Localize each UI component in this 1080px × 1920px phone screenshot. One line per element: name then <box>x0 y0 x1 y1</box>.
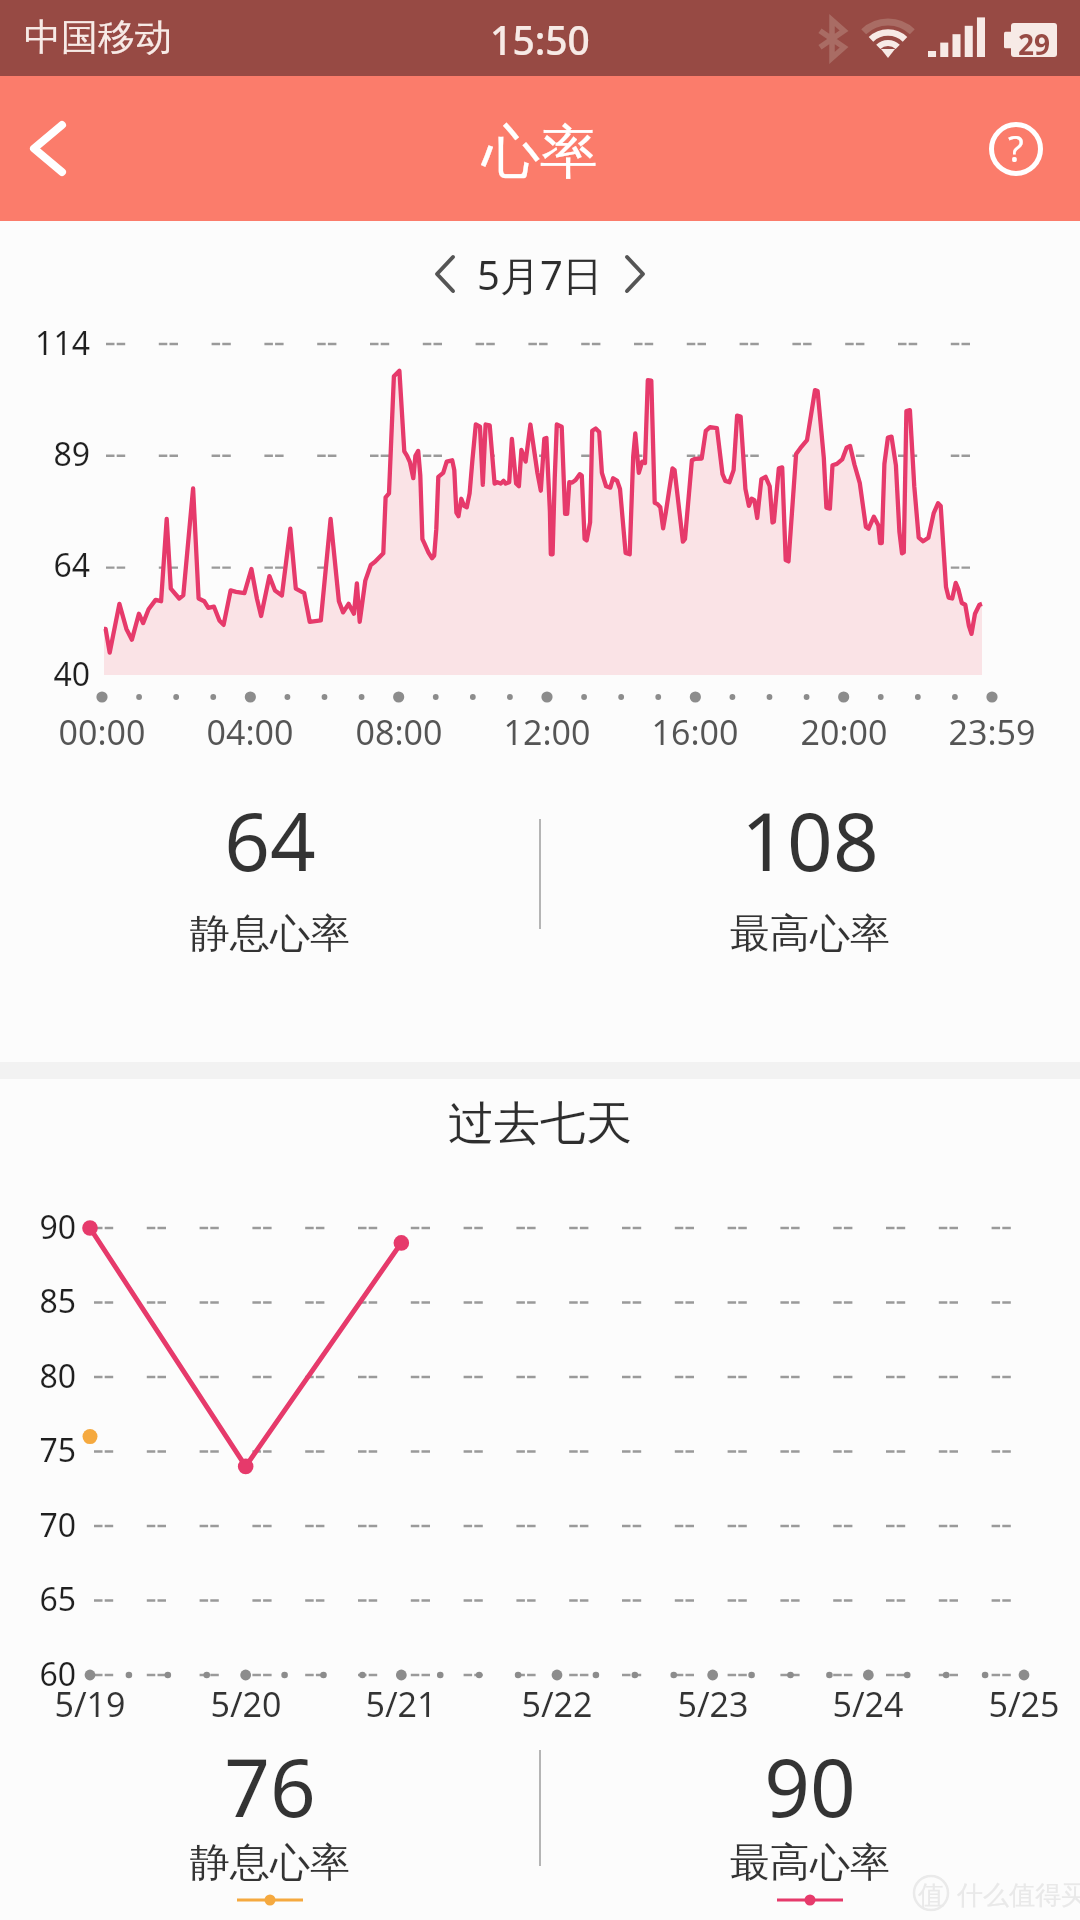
button[interactable]: Help <box>950 76 1080 221</box>
staticText: 过去七天 <box>0 1095 1080 1153</box>
staticText: 65 <box>0 1577 76 1621</box>
button[interactable]: 108 <box>630 763 990 953</box>
staticText: 64 <box>90 785 450 894</box>
staticText: 108 <box>630 785 990 894</box>
staticText: 76 <box>90 1731 450 1840</box>
staticText: 80 <box>0 1354 76 1398</box>
button[interactable]: 64 <box>90 763 450 953</box>
staticText: 85 <box>0 1279 76 1323</box>
button[interactable]: Back <box>0 76 120 221</box>
staticText: 5/19 <box>0 1681 240 1727</box>
staticText: 值 <box>918 1879 944 1912</box>
button[interactable]: Previous day <box>413 239 477 309</box>
staticText: 23:59 <box>842 709 1080 755</box>
staticText: 最高心率 <box>630 1837 990 1887</box>
staticText: 最高心率 <box>630 908 990 958</box>
staticText: 5/25 <box>874 1681 1080 1727</box>
staticText: ? <box>1008 124 1024 173</box>
staticText: 15:50 <box>0 13 1080 66</box>
staticText: 什么值得买 <box>957 1879 1080 1912</box>
staticText: 5/20 <box>96 1681 396 1727</box>
staticText: 70 <box>0 1503 76 1547</box>
staticText: 静息心率 <box>90 908 450 958</box>
staticText: 64 <box>0 543 90 587</box>
staticText: 12:00 <box>397 709 697 755</box>
button[interactable]: Next day <box>603 239 667 309</box>
staticText: 89 <box>0 432 90 476</box>
staticText: 04:00 <box>100 709 400 755</box>
button[interactable]: 90 <box>630 1709 990 1899</box>
staticText: 5/23 <box>563 1681 863 1727</box>
staticText: 16:00 <box>545 709 845 755</box>
staticText: 75 <box>0 1428 76 1472</box>
staticText: 90 <box>630 1731 990 1840</box>
staticText: 5月7日 <box>477 247 603 302</box>
staticText: 5/21 <box>251 1681 551 1727</box>
button[interactable]: 76 <box>90 1709 450 1899</box>
staticText: 29 <box>1011 25 1057 63</box>
staticText: 心率 <box>482 116 598 189</box>
staticText: 5/24 <box>718 1681 1018 1727</box>
staticText: 08:00 <box>249 709 549 755</box>
staticText: 114 <box>0 321 90 365</box>
staticText: 00:00 <box>0 709 252 755</box>
staticText: 90 <box>0 1205 76 1249</box>
staticText: 60 <box>0 1652 76 1696</box>
staticText: 5/22 <box>407 1681 707 1727</box>
staticText: 40 <box>0 652 90 696</box>
staticText: 20:00 <box>694 709 994 755</box>
staticText: 静息心率 <box>90 1837 450 1887</box>
staticText: 中国移动 <box>24 14 172 61</box>
